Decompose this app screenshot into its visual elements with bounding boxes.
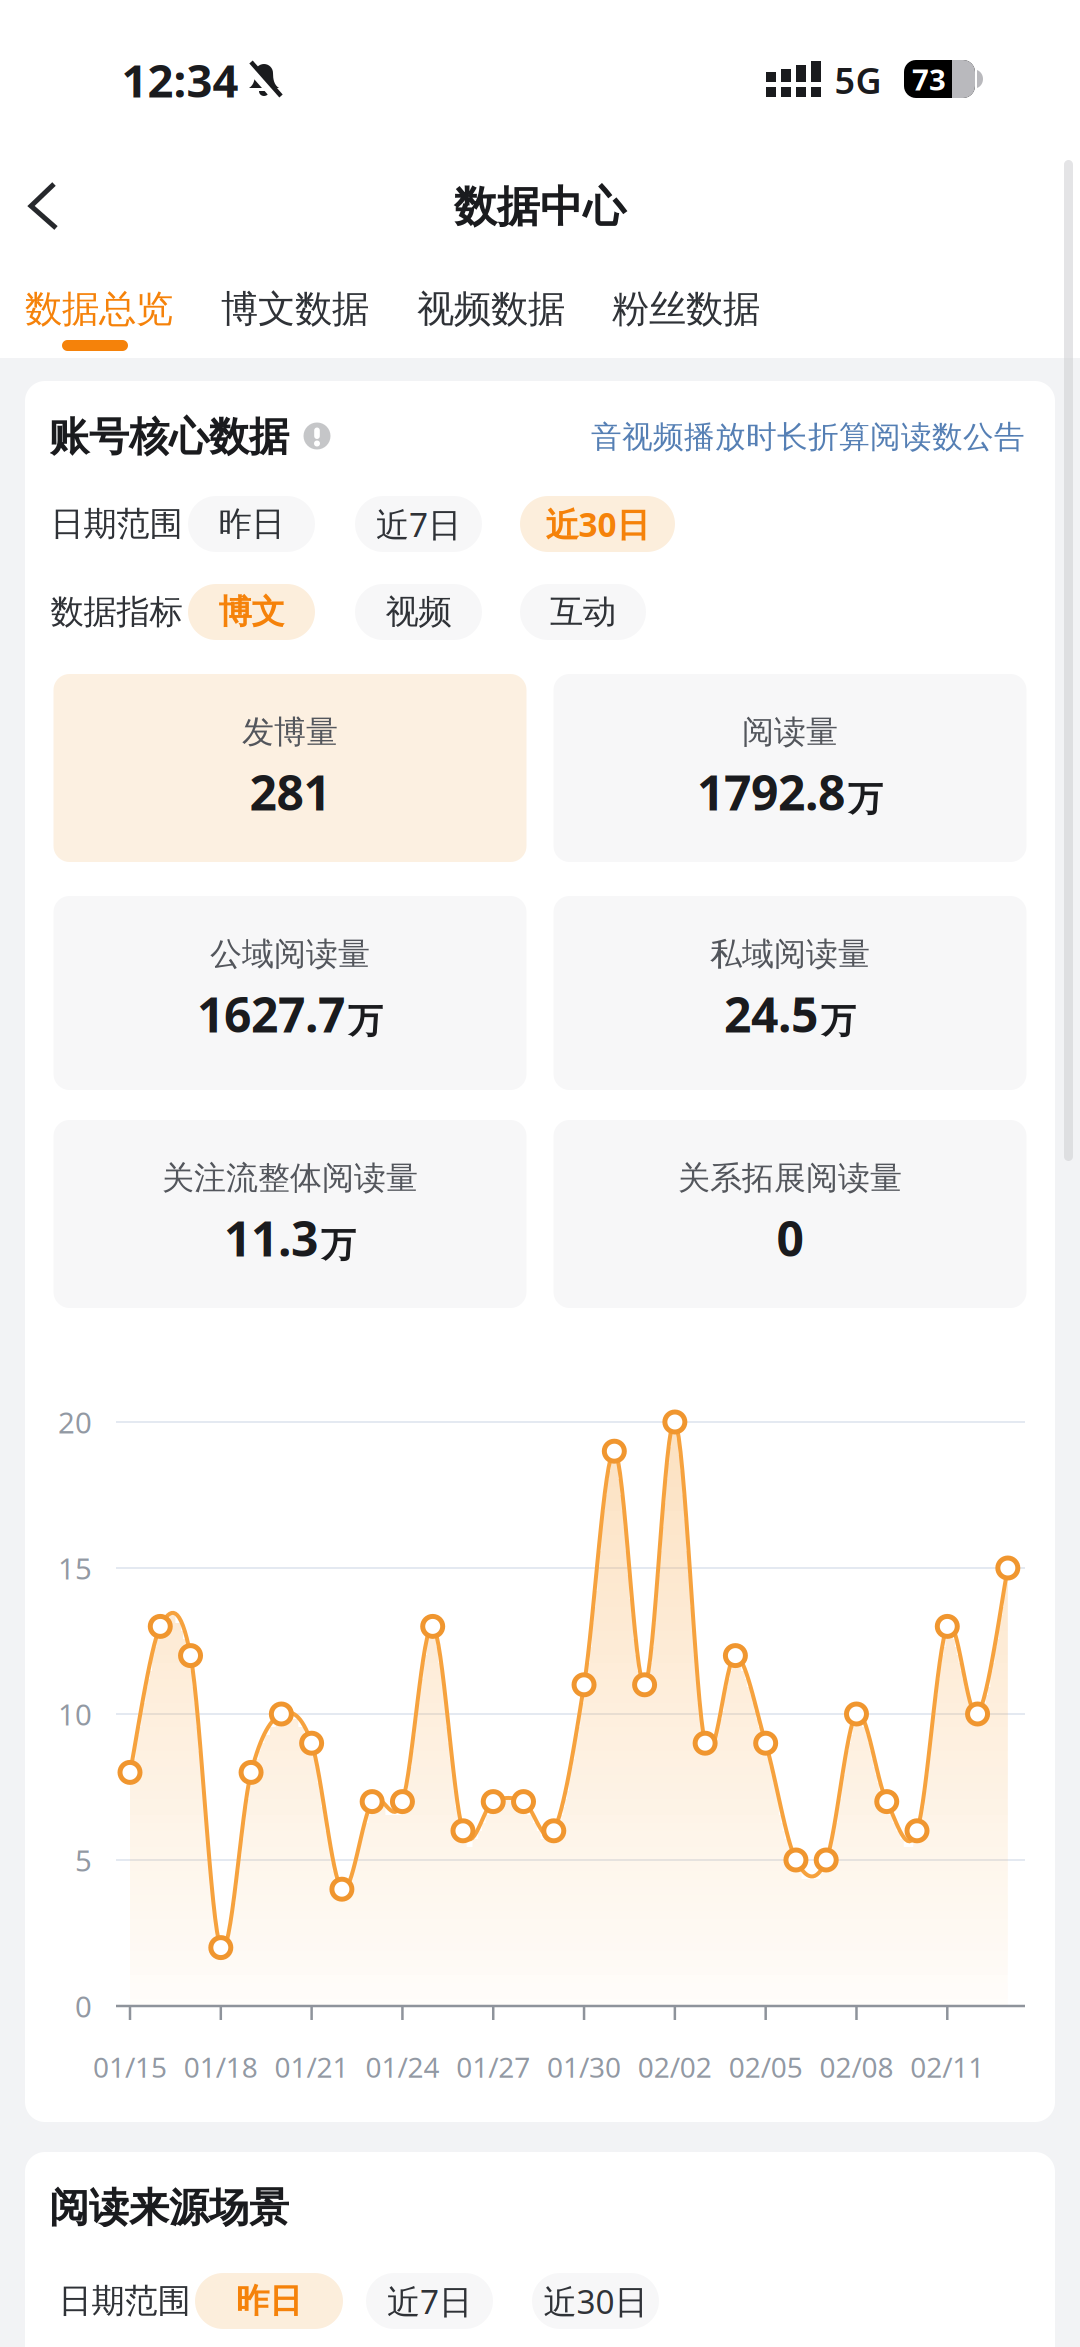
staticText: 公域阅读量 (210, 934, 370, 974)
button[interactable]: 说明 (303, 422, 331, 450)
staticText: 关注流整体阅读量 (162, 1158, 418, 1198)
staticText: 01/21 (275, 2048, 349, 2086)
staticText: 私域阅读量 (710, 934, 870, 974)
staticText: 10 (58, 1694, 92, 1733)
staticText: 数据中心 (454, 181, 626, 233)
button[interactable]: 数据总览 (4, 279, 194, 339)
staticText: 博文数据 (221, 286, 369, 332)
staticText: 博文 (218, 591, 284, 632)
button[interactable]: 近30日 (532, 2273, 659, 2329)
staticText: 02/02 (638, 2048, 712, 2086)
staticText: 0 (75, 1986, 92, 2025)
staticText: 近7日 (376, 502, 461, 546)
button[interactable]: 互动 (520, 584, 646, 640)
button[interactable]: 昨日 (195, 2273, 343, 2329)
button[interactable]: 近7日 (366, 2273, 493, 2329)
staticText: 1792.8 (697, 760, 845, 824)
staticText: 近30日 (543, 2279, 647, 2323)
staticText: 日期范围 (58, 2280, 190, 2321)
button[interactable]: 近7日 (355, 496, 482, 552)
staticText: 01/27 (456, 2048, 530, 2086)
staticText: 01/24 (365, 2048, 439, 2086)
button[interactable]: 博文 (188, 584, 315, 640)
button[interactable]: 近30日 (520, 496, 675, 552)
staticText: 02/08 (819, 2048, 893, 2086)
staticText: 视频 (385, 591, 451, 632)
staticText: 01/18 (184, 2048, 258, 2086)
staticText: 数据指标 (50, 591, 182, 632)
staticText: 日期范围 (50, 503, 182, 544)
staticText: 近7日 (387, 2279, 472, 2323)
button[interactable]: 博文数据 (200, 279, 390, 339)
staticText: 12:34 (121, 50, 238, 110)
staticText: 视频数据 (417, 286, 565, 332)
staticText: 0 (776, 1206, 803, 1270)
staticText: 万 (321, 1224, 356, 1266)
staticText: 数据总览 (25, 286, 173, 332)
staticText: 关系拓展阅读量 (678, 1158, 902, 1198)
staticText: 阅读量 (742, 712, 838, 752)
staticText: 01/30 (547, 2048, 621, 2086)
staticText: 02/11 (910, 2048, 984, 2086)
staticText: 昨日 (236, 2280, 302, 2321)
staticText: 万 (821, 1000, 856, 1042)
staticText: 01/15 (93, 2048, 167, 2086)
staticText: 发博量 (242, 712, 338, 752)
staticText: 02/05 (729, 2048, 803, 2086)
staticText: 5 (75, 1840, 92, 1879)
staticText: 阅读来源场景 (49, 2183, 289, 2232)
staticText: 互动 (550, 591, 616, 632)
button[interactable]: 视频数据 (396, 279, 586, 339)
staticText: 万 (348, 1000, 383, 1042)
staticText: 音视频播放时长折算阅读数公告 (591, 418, 1025, 456)
staticText: 昨日 (218, 503, 284, 544)
staticText: 24.5 (724, 982, 818, 1046)
button[interactable]: 粉丝数据 (591, 279, 781, 339)
button[interactable]: 昨日 (188, 496, 315, 552)
button[interactable]: 视频 (355, 584, 482, 640)
staticText: 万 (848, 778, 883, 820)
staticText: 粉丝数据 (612, 286, 760, 332)
staticText: 20 (58, 1402, 92, 1441)
staticText: 11.3 (224, 1206, 318, 1270)
staticText: 5G (834, 56, 881, 104)
staticText: 73 (912, 59, 946, 98)
staticText: 1627.7 (197, 982, 345, 1046)
staticText: 281 (249, 760, 330, 824)
staticText: 近30日 (545, 502, 649, 546)
staticText: 15 (58, 1548, 92, 1587)
button[interactable]: 返回 (16, 182, 72, 230)
button[interactable]: 音视频播放时长折算阅读数公告 (465, 418, 1025, 456)
staticText: 账号核心数据 (49, 412, 289, 461)
